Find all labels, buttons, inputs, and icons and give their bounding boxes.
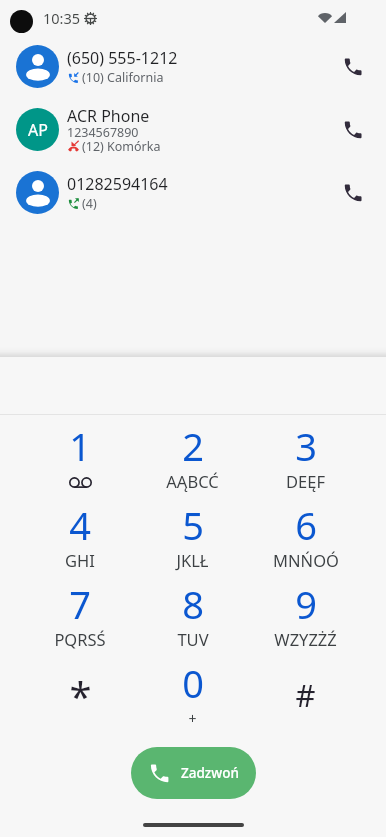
- button[interactable]: 5: [136, 505, 249, 584]
- staticText: 1234567890: [67, 124, 139, 141]
- staticText: 3: [295, 420, 317, 472]
- staticText: Zadzwoń: [181, 764, 239, 782]
- staticText: 2: [182, 420, 204, 472]
- button[interactable]: 8: [136, 584, 249, 663]
- staticText: AĄBCĆ: [166, 470, 219, 492]
- staticText: TUV: [177, 628, 209, 650]
- staticText: JKLŁ: [176, 549, 209, 571]
- staticText: ACR Phone: [67, 105, 150, 127]
- button[interactable]: Call: [328, 168, 378, 218]
- staticText: (4): [82, 195, 97, 212]
- button[interactable]: #: [249, 663, 362, 742]
- staticText: 5: [182, 499, 204, 551]
- button[interactable]: 9: [249, 584, 362, 663]
- staticText: (10) California: [82, 69, 164, 86]
- staticText: 9: [295, 578, 317, 630]
- button[interactable]: Zadzwoń: [131, 747, 256, 799]
- button[interactable]: Call: [328, 105, 378, 155]
- staticText: 1: [69, 420, 91, 472]
- staticText: 0: [182, 657, 204, 709]
- button[interactable]: AP: [0, 98, 386, 161]
- button[interactable]: Call: [328, 42, 378, 92]
- button[interactable]: *: [24, 663, 136, 742]
- staticText: MNŃOÓ: [273, 549, 339, 571]
- button[interactable]: 6: [249, 505, 362, 584]
- button[interactable]: 1: [24, 426, 136, 505]
- staticText: GHI: [65, 549, 95, 571]
- staticText: 7: [69, 578, 91, 630]
- button[interactable]: 7: [24, 584, 136, 663]
- staticText: PQRSŚ: [54, 628, 106, 650]
- staticText: 8: [182, 578, 204, 630]
- staticText: AP: [28, 119, 48, 141]
- staticText: (12) Komórka: [82, 138, 161, 155]
- button[interactable]: 3: [249, 426, 362, 505]
- staticText: 6: [295, 499, 317, 551]
- button[interactable]: 4: [24, 505, 136, 584]
- staticText: DEĘF: [286, 470, 325, 492]
- staticText: +: [188, 709, 197, 728]
- staticText: 4: [69, 499, 91, 551]
- staticText: 10:35: [43, 8, 81, 28]
- button[interactable]: 0: [136, 663, 249, 742]
- staticText: 01282594164: [67, 173, 168, 195]
- button[interactable]: (650) 555-1212: [0, 35, 386, 98]
- staticText: WZYZŻŹ: [274, 628, 337, 650]
- button[interactable]: 2: [136, 426, 249, 505]
- staticText: #: [295, 674, 316, 716]
- staticText: *: [69, 668, 92, 722]
- staticText: (650) 555-1212: [67, 47, 178, 69]
- button[interactable]: 01282594164: [0, 161, 386, 224]
